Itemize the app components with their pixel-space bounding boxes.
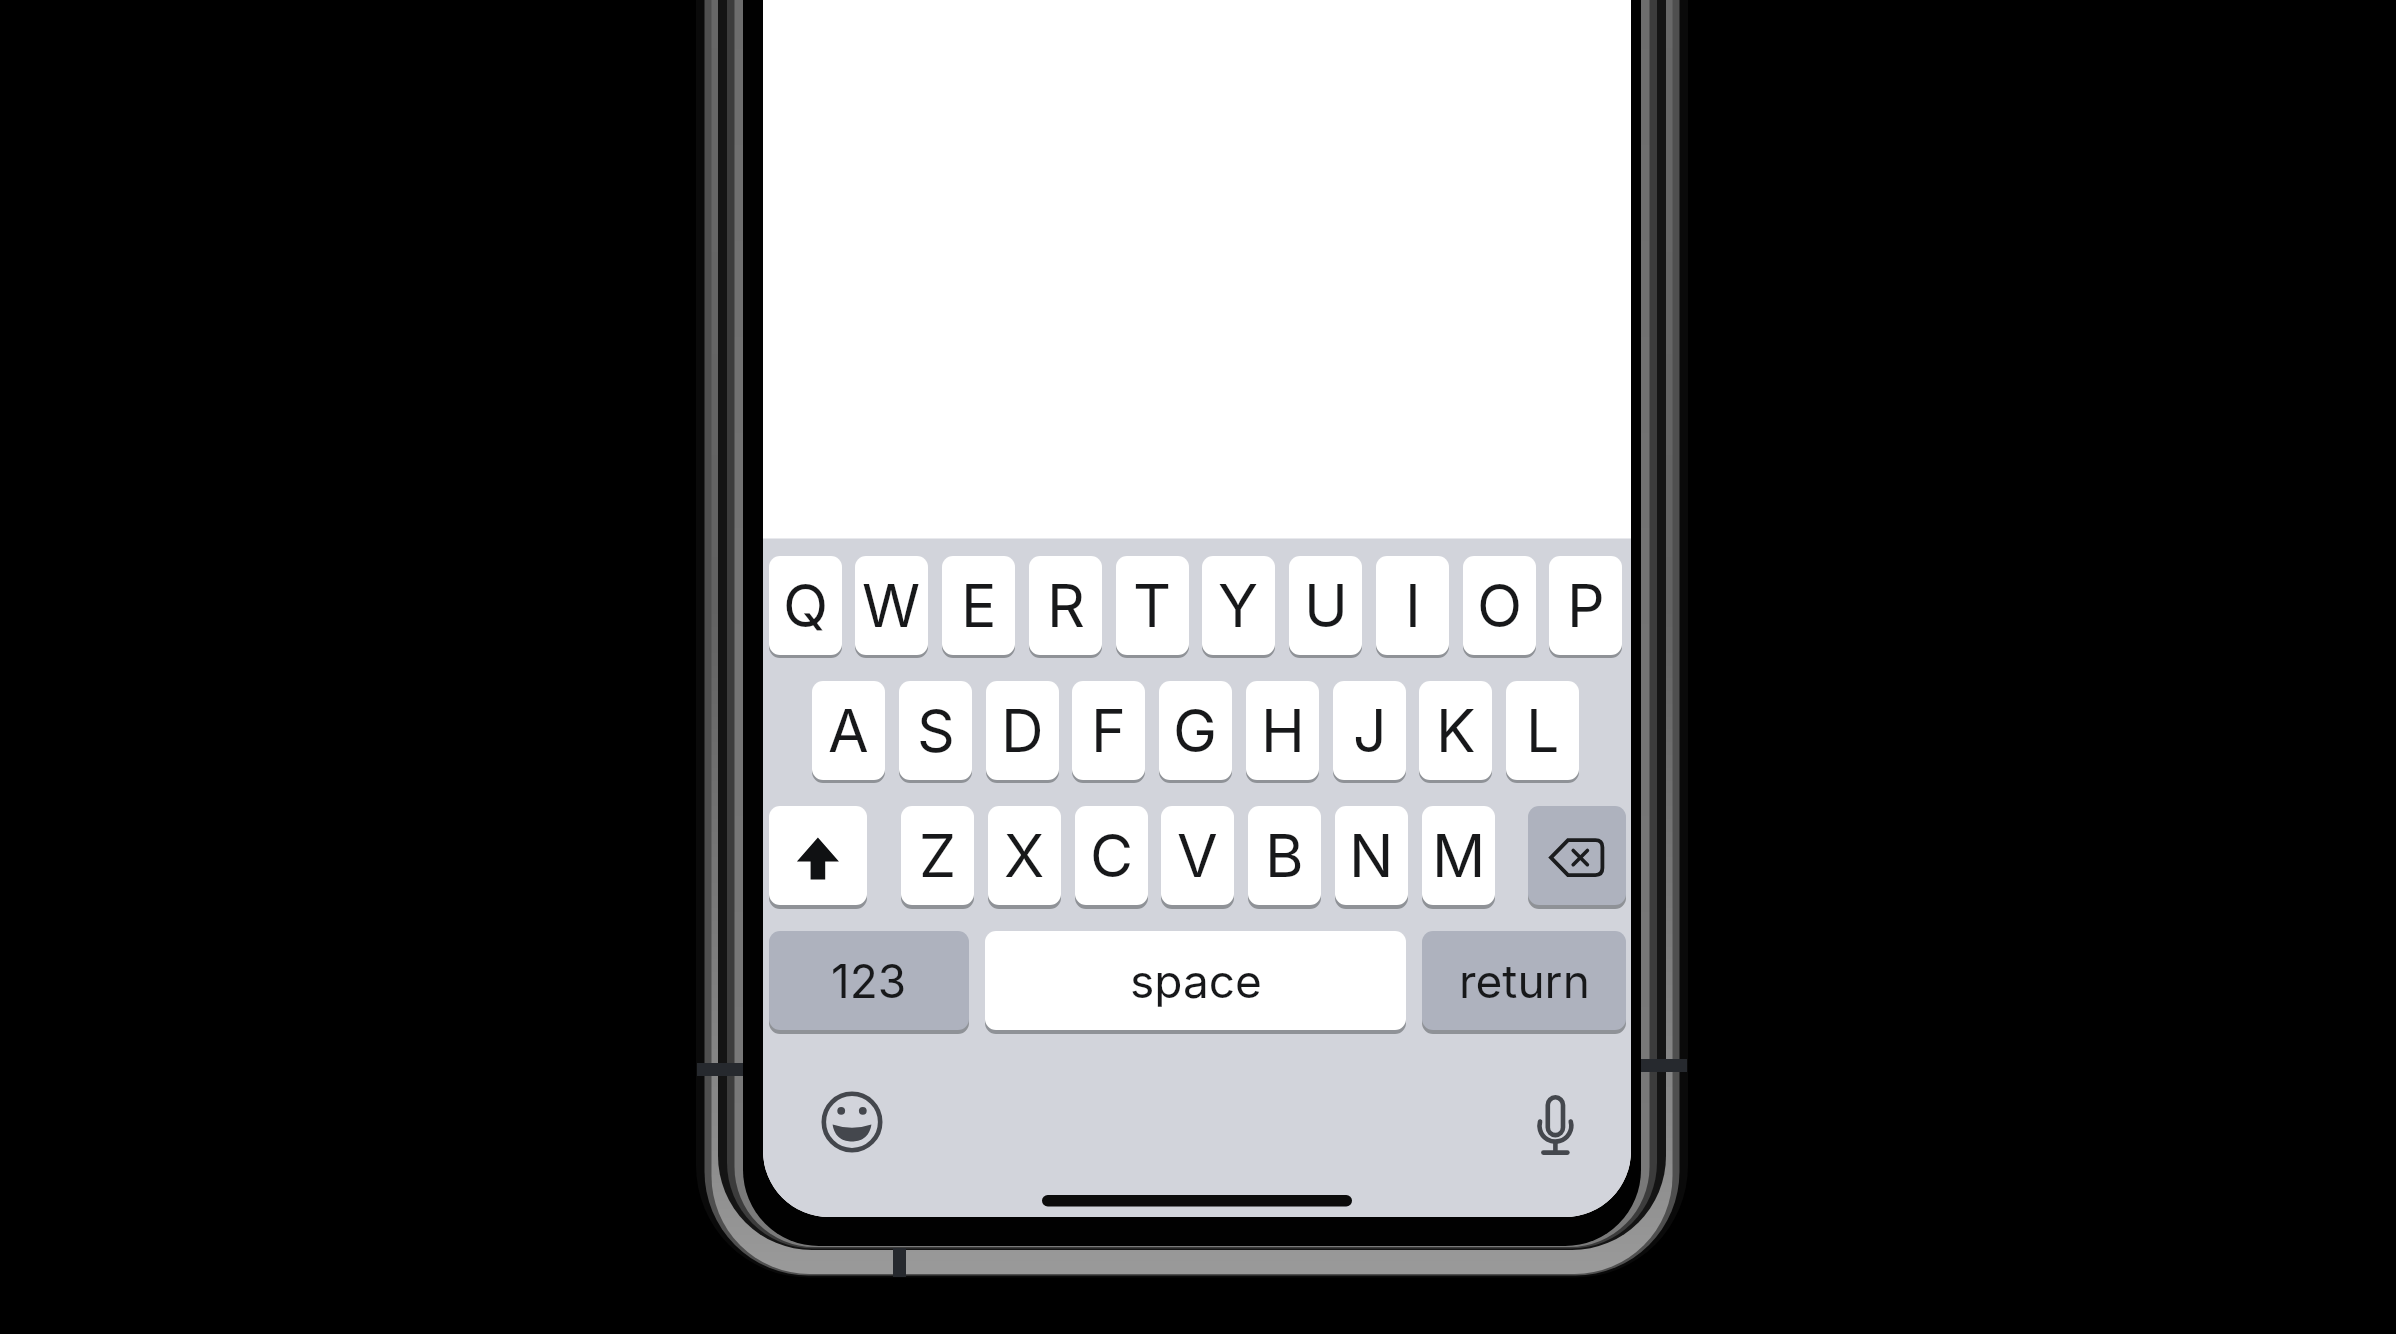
staticText: W bbox=[862, 570, 921, 641]
button[interactable] bbox=[818, 1088, 886, 1156]
button[interactable]: A bbox=[812, 681, 885, 780]
button[interactable]: F bbox=[1072, 681, 1145, 780]
button[interactable]: W bbox=[855, 556, 928, 655]
button[interactable]: space bbox=[985, 931, 1406, 1030]
button[interactable]: M bbox=[1422, 806, 1495, 905]
staticText: K bbox=[1436, 695, 1476, 766]
staticText: 123 bbox=[831, 953, 907, 1009]
button[interactable]: G bbox=[1159, 681, 1232, 780]
button[interactable]: D bbox=[986, 681, 1059, 780]
staticText: Q bbox=[783, 570, 829, 641]
staticText: I bbox=[1405, 570, 1421, 641]
button[interactable] bbox=[1528, 806, 1626, 905]
staticText: O bbox=[1477, 570, 1523, 641]
button[interactable]: return bbox=[1422, 931, 1626, 1030]
button[interactable]: K bbox=[1419, 681, 1492, 780]
staticText: D bbox=[1001, 695, 1044, 766]
button[interactable]: 123 bbox=[769, 931, 969, 1030]
staticText: G bbox=[1173, 695, 1218, 766]
staticText: H bbox=[1261, 695, 1305, 766]
staticText: R bbox=[1047, 570, 1085, 641]
staticText: A bbox=[828, 695, 869, 766]
button[interactable]: Y bbox=[1202, 556, 1275, 655]
staticText: V bbox=[1177, 820, 1218, 891]
button[interactable]: O bbox=[1463, 556, 1536, 655]
button[interactable]: L bbox=[1506, 681, 1579, 780]
staticText: Y bbox=[1218, 570, 1259, 641]
button[interactable]: U bbox=[1289, 556, 1362, 655]
button[interactable]: P bbox=[1549, 556, 1622, 655]
staticText: P bbox=[1567, 570, 1605, 641]
staticText: U bbox=[1304, 570, 1348, 641]
button[interactable] bbox=[769, 806, 867, 905]
button[interactable] bbox=[1525, 1093, 1587, 1155]
button[interactable]: Q bbox=[769, 556, 842, 655]
staticText: M bbox=[1432, 820, 1486, 891]
staticText: J bbox=[1353, 695, 1387, 766]
button[interactable]: Z bbox=[901, 806, 974, 905]
staticText: F bbox=[1091, 695, 1126, 766]
staticText: B bbox=[1265, 820, 1304, 891]
staticText: X bbox=[1004, 820, 1045, 891]
staticText: C bbox=[1090, 820, 1134, 891]
button[interactable]: R bbox=[1029, 556, 1102, 655]
staticText: Z bbox=[919, 820, 957, 891]
button[interactable]: E bbox=[942, 556, 1015, 655]
staticText: L bbox=[1526, 695, 1560, 766]
button[interactable]: I bbox=[1376, 556, 1449, 655]
staticText: space bbox=[1130, 953, 1262, 1009]
button[interactable]: C bbox=[1075, 806, 1148, 905]
staticText: return bbox=[1459, 953, 1590, 1009]
button[interactable]: S bbox=[899, 681, 972, 780]
staticText: N bbox=[1349, 820, 1394, 891]
staticText: T bbox=[1133, 570, 1172, 641]
button[interactable]: J bbox=[1333, 681, 1406, 780]
button[interactable]: H bbox=[1246, 681, 1319, 780]
staticText: E bbox=[961, 570, 997, 641]
button[interactable]: X bbox=[988, 806, 1061, 905]
button[interactable]: V bbox=[1161, 806, 1234, 905]
button[interactable]: T bbox=[1116, 556, 1189, 655]
staticText: S bbox=[917, 695, 955, 766]
button[interactable]: N bbox=[1335, 806, 1408, 905]
button[interactable]: B bbox=[1248, 806, 1321, 905]
